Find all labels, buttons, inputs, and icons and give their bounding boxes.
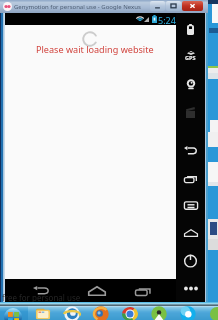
button[interactable]: More options — [176, 275, 205, 301]
button[interactable]: Window control — [150, 1, 165, 11]
button[interactable]: Chrome — [115, 306, 144, 320]
button[interactable]: Start — [4, 308, 22, 320]
staticText: GPS — [185, 54, 196, 61]
button[interactable]: Camera — [176, 71, 205, 97]
button[interactable]: Screen capture — [176, 99, 205, 125]
button[interactable]: Back — [30, 280, 52, 300]
button[interactable]: Recents — [132, 281, 154, 301]
button[interactable]: Back — [176, 137, 205, 163]
button[interactable]: Window control — [166, 1, 181, 11]
button[interactable]: Menu — [176, 192, 205, 218]
button[interactable]: Recents — [176, 165, 205, 191]
button[interactable]: Firefox — [86, 306, 115, 320]
staticText: free for personal use — [2, 292, 81, 303]
staticText: Please wait loading website — [36, 43, 154, 55]
button[interactable]: Home — [176, 220, 205, 246]
button[interactable]: Power — [176, 247, 205, 273]
button[interactable]: Close — [182, 1, 203, 11]
button[interactable]: App — [144, 306, 173, 320]
button[interactable]: Battery — [176, 16, 205, 42]
button[interactable]: GPS — [176, 43, 205, 69]
staticText: 5:24 — [158, 14, 176, 26]
button[interactable]: Home — [86, 281, 108, 301]
button[interactable]: App — [202, 306, 218, 320]
button[interactable]: Skype — [173, 306, 202, 320]
button[interactable]: Internet Explorer — [57, 306, 86, 320]
button[interactable]: Explorer — [28, 306, 57, 320]
staticText: Genymotion for personal use - Google Nex… — [14, 3, 141, 11]
